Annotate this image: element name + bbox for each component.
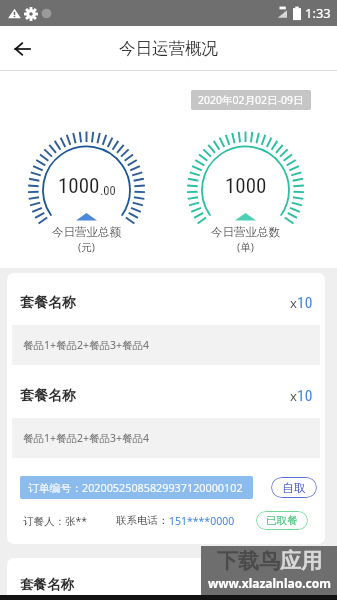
staticText: 10 [297,387,313,405]
staticText: 151****0000 [169,514,235,528]
staticText: 套餐名称 [20,576,74,593]
staticText: 套餐名称 [20,294,76,312]
button[interactable]: 套餐名称 [7,558,325,595]
button[interactable]: 2020年02月02日-09日 [191,90,311,110]
button[interactable]: Back [0,27,44,71]
staticText: 订餐人：张** [23,514,88,528]
staticText: (单) [237,240,254,254]
staticText: (元) [78,240,95,254]
staticText: 2020年02月02日-09日 [198,93,304,107]
staticText: 1000 [225,174,267,199]
staticText: 已取餐 [266,514,298,527]
button[interactable]: 已取餐 [256,511,308,530]
staticText: 1:33 [305,4,331,22]
staticText: 今日营业总额 [52,225,121,239]
staticText: 应用 [280,548,322,574]
staticText: .00 [100,183,116,198]
staticText: 套餐名称 [20,387,76,405]
staticText: 餐品1+餐品2+餐品3+餐品4 [23,431,150,445]
staticText: 餐品1+餐品2+餐品3+餐品4 [23,338,150,352]
staticText: www.xlazalnlao.com [208,575,331,591]
staticText: 今日营业总数 [211,225,280,239]
staticText: 1000 [58,174,100,199]
staticText: x [290,294,297,312]
staticText: 订单编号：20200525085829937120000102 [28,480,243,495]
staticText: 下载鸟 [217,548,280,574]
button[interactable]: 自取 [271,477,317,498]
staticText: 自取 [282,480,306,495]
staticText: 10 [297,294,313,312]
staticText: 联系电话： [116,514,169,527]
staticText: 今日运营概况 [119,38,218,59]
staticText: x [290,387,297,405]
